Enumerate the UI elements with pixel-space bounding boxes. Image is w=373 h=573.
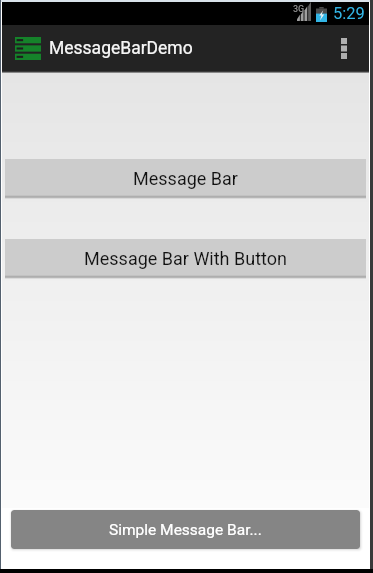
- staticText: Simple Message Bar...: [109, 521, 262, 539]
- staticText: MessageBarDemo: [49, 38, 193, 59]
- button[interactable]: Message Bar With Button: [5, 239, 366, 277]
- staticText: Message Bar With Button: [84, 248, 287, 269]
- button[interactable]: More options: [324, 25, 369, 71]
- button[interactable]: Simple Message Bar...: [11, 510, 360, 549]
- staticText: 3G: [293, 4, 305, 15]
- staticText: 5:29: [333, 4, 365, 23]
- staticText: Message Bar: [133, 168, 238, 189]
- button[interactable]: Message Bar: [5, 159, 366, 197]
